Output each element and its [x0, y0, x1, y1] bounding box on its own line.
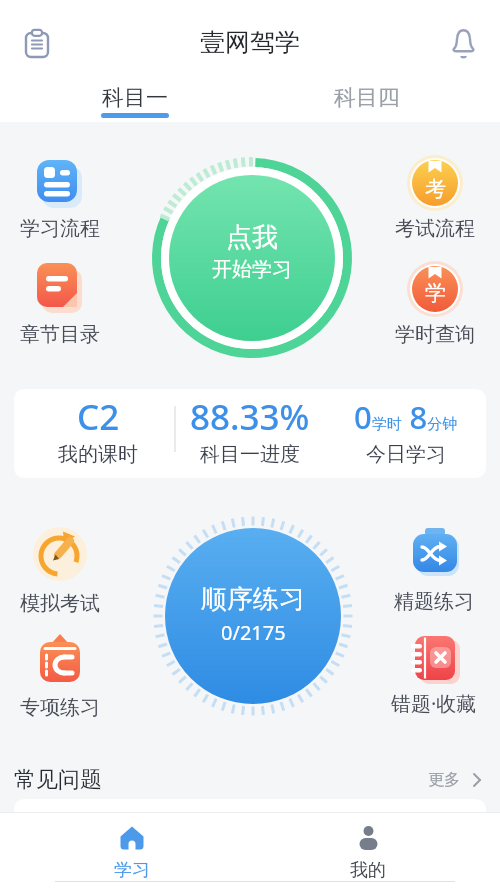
staticText: 科目四 — [334, 84, 400, 112]
button[interactable] — [393, 258, 477, 348]
staticText: 考试流程 — [395, 216, 475, 241]
button[interactable]: 更多 — [420, 760, 490, 800]
staticText: 我的课时 — [58, 442, 138, 467]
staticText: 学习流程 — [20, 216, 100, 241]
staticText: 顺序练习 — [201, 583, 305, 616]
staticText: 科目一进度 — [200, 442, 300, 467]
button[interactable] — [318, 816, 418, 886]
button[interactable] — [393, 154, 477, 242]
button[interactable] — [166, 529, 340, 703]
staticText: 0学时 8分钟 — [354, 396, 458, 438]
staticText: 章节目录 — [20, 322, 100, 347]
button[interactable] — [85, 78, 185, 122]
button[interactable] — [18, 522, 102, 616]
staticText: 考 — [425, 176, 446, 202]
staticText: 常见问题 — [14, 766, 102, 794]
button[interactable] — [317, 78, 417, 122]
staticText: 点我 — [226, 221, 278, 254]
staticText: 模拟考试 — [20, 591, 100, 616]
staticText: 开始学习 — [212, 257, 292, 282]
staticText: 壹网驾学 — [200, 27, 300, 58]
staticText: 学 — [425, 280, 446, 306]
staticText: C2 — [77, 393, 120, 441]
button[interactable] — [18, 630, 102, 724]
button[interactable] — [392, 630, 476, 724]
staticText: 今日学习 — [366, 442, 446, 467]
staticText: 学习 — [114, 859, 150, 882]
staticText: 我的 — [350, 859, 386, 882]
button[interactable] — [82, 816, 182, 886]
button[interactable] — [14, 389, 486, 478]
button[interactable] — [167, 173, 337, 343]
button[interactable] — [392, 522, 476, 616]
staticText: 科目一 — [102, 84, 168, 112]
staticText: 学时查询 — [395, 322, 475, 347]
staticText: 错题·收藏 — [391, 690, 477, 717]
button[interactable] — [20, 25, 56, 61]
button[interactable] — [18, 154, 102, 242]
staticText: 专项练习 — [20, 695, 100, 720]
staticText: 精题练习 — [394, 589, 474, 614]
button[interactable] — [18, 258, 102, 348]
staticText: 更多 — [428, 770, 460, 790]
staticText: 0/2175 — [221, 619, 286, 646]
staticText: 88.33% — [190, 393, 310, 441]
button[interactable] — [443, 22, 483, 64]
